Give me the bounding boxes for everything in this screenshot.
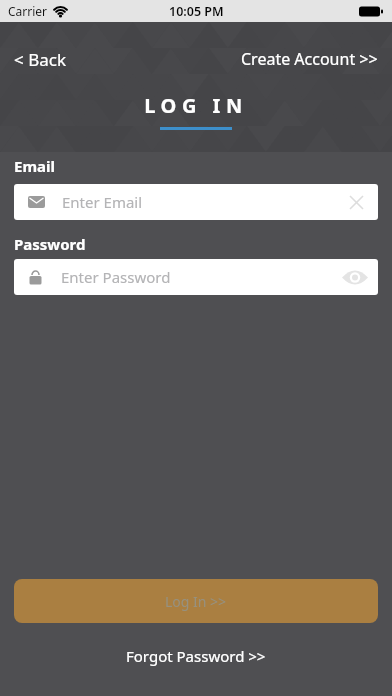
staticText: Carrier [8, 3, 48, 19]
staticText: LOG IN [0, 92, 392, 119]
staticText: 10:05 PM [169, 3, 224, 20]
button[interactable]: Enter Password [14, 259, 378, 295]
button[interactable]: Enter Email [14, 184, 378, 220]
button[interactable]: Log In >> [14, 579, 378, 623]
staticText: Log In >> [165, 592, 227, 611]
staticText: Enter Email [62, 192, 143, 212]
button[interactable]: < Back [14, 48, 66, 71]
staticText: < Back [14, 48, 66, 71]
staticText: Email [14, 156, 55, 176]
button[interactable]: Create Account >> [241, 48, 378, 70]
button[interactable]: Forgot Password >> [126, 646, 266, 666]
staticText: Password [14, 234, 86, 254]
staticText: Enter Password [61, 267, 171, 287]
staticText: Create Account >> [241, 48, 378, 70]
staticText: Forgot Password >> [126, 646, 266, 666]
